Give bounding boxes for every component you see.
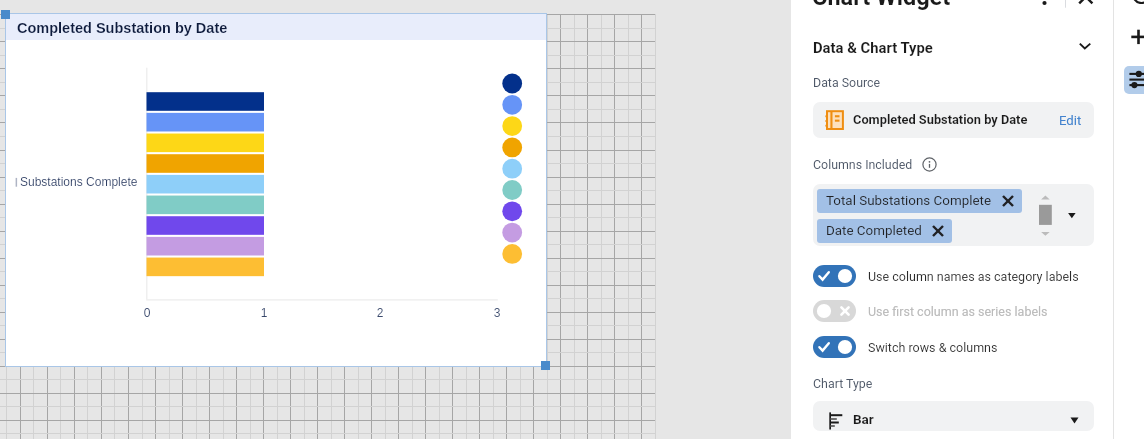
staticText: 2 xyxy=(370,306,390,319)
staticText: Columns Included xyxy=(813,157,913,172)
staticText: Bar xyxy=(853,411,874,427)
button[interactable]: Bar xyxy=(813,401,1094,431)
staticText: Total Substations Complete xyxy=(826,193,992,209)
staticText: 1 xyxy=(254,306,274,319)
staticText: 0 xyxy=(137,306,157,319)
button[interactable]: Use column names as category labels xyxy=(813,265,1079,287)
button[interactable]: Edit xyxy=(1059,113,1082,128)
staticText: Edit xyxy=(1059,113,1082,128)
button[interactable]: Completed Substation by Date xyxy=(5,13,547,367)
staticText: Completed Substation by Date xyxy=(853,112,1028,127)
staticText: Switch rows & columns xyxy=(868,340,998,355)
staticText: Use column names as category labels xyxy=(868,269,1079,284)
button[interactable]: Widget settings xyxy=(1124,66,1144,94)
staticText: Chart Widget xyxy=(812,0,951,11)
staticText: Substations Complete xyxy=(20,175,138,188)
button[interactable]: Total Substations Complete xyxy=(817,189,1022,213)
staticText: Data & Chart Type xyxy=(813,39,933,56)
button[interactable]: Info xyxy=(922,157,937,172)
button[interactable]: Add widget xyxy=(1131,27,1144,49)
staticText: Date Completed xyxy=(826,223,922,239)
staticText: Completed Substation by Date xyxy=(17,20,228,36)
button[interactable]: Select columns xyxy=(1064,205,1084,225)
staticText: 3 xyxy=(487,306,507,319)
button[interactable]: Use first column as series labels xyxy=(813,300,1048,322)
button[interactable]: Completed Substation by Date xyxy=(813,102,1094,138)
staticText: Use first column as series labels xyxy=(868,304,1048,319)
button[interactable]: Close xyxy=(1074,0,1098,10)
staticText: Data Source xyxy=(813,75,881,90)
staticText: Chart Type xyxy=(813,376,873,391)
button[interactable]: Date Completed xyxy=(817,219,952,243)
button[interactable]: Switch rows & columns xyxy=(813,336,998,358)
button[interactable]: More options xyxy=(1035,0,1055,6)
button[interactable] xyxy=(800,34,1100,60)
